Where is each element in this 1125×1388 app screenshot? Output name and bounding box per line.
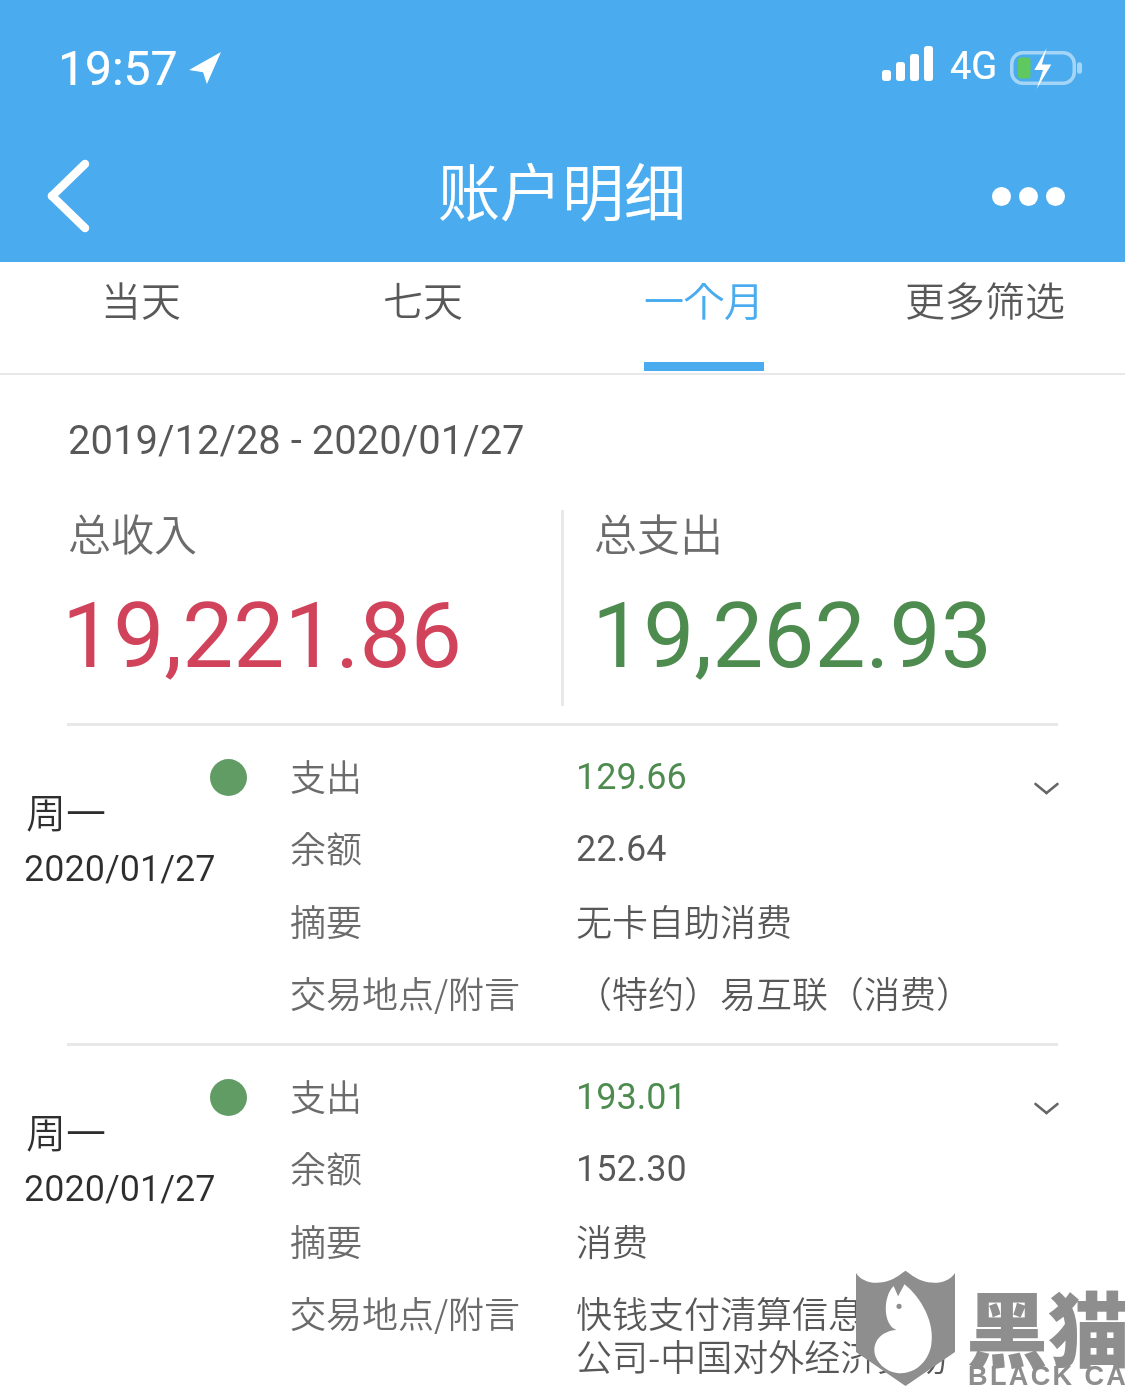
staticText: 152.30: [576, 1148, 687, 1190]
button[interactable]: 更多筛选: [844, 262, 1125, 373]
staticText: 19:57: [58, 40, 178, 96]
staticText: 193.01: [576, 1076, 687, 1118]
button[interactable]: 周一: [0, 723, 1125, 1045]
staticText: 余额: [290, 1141, 363, 1193]
button[interactable]: More options: [992, 130, 1065, 262]
staticText: 19,262.93: [592, 583, 992, 690]
staticText: 更多筛选: [905, 270, 1065, 328]
staticText: 一个月: [644, 270, 764, 328]
staticText: 周一: [26, 1102, 106, 1160]
button[interactable]: 一个月: [563, 262, 844, 373]
staticText: （特约）易互联（消费）: [576, 966, 973, 1018]
staticText: 22.64: [576, 828, 667, 870]
staticText: 公司-中国对外经济贸易: [576, 1329, 949, 1381]
button[interactable]: Back: [0, 110, 150, 262]
button[interactable]: Expand details: [1014, 759, 1078, 823]
staticText: 2020/01/27: [24, 848, 216, 890]
button[interactable]: Expand details: [1014, 1079, 1078, 1143]
staticText: 129.66: [576, 756, 687, 798]
staticText: 消费: [576, 1214, 649, 1266]
staticText: 4G: [950, 44, 998, 89]
staticText: 摘要: [290, 1214, 363, 1266]
staticText: 2020/01/27: [24, 1168, 216, 1210]
staticText: 交易地点/附言: [290, 966, 521, 1018]
staticText: 总支出: [594, 501, 723, 563]
button[interactable]: 七天: [282, 262, 563, 373]
staticText: 支出: [290, 749, 363, 801]
staticText: 19,221.86: [62, 583, 462, 690]
staticText: 余额: [290, 821, 363, 873]
staticText: BLACK CAT: [968, 1361, 1125, 1388]
staticText: 摘要: [290, 894, 363, 946]
staticText: 交易地点/附言: [290, 1286, 521, 1338]
staticText: 当天: [101, 270, 181, 328]
staticText: 七天: [383, 270, 463, 328]
staticText: 快钱支付清算信息有限: [576, 1286, 937, 1338]
staticText: 2019/12/28 - 2020/01/27: [68, 417, 525, 464]
button[interactable]: 周一: [0, 1043, 1125, 1365]
staticText: 无卡自助消费: [576, 894, 793, 946]
button[interactable]: 当天: [0, 262, 282, 373]
staticText: 总收入: [68, 501, 197, 563]
staticText: 支出: [290, 1069, 363, 1121]
staticText: 黑猫: [966, 1266, 1125, 1385]
staticText: 账户明细: [438, 144, 687, 234]
staticText: 周一: [26, 782, 106, 840]
